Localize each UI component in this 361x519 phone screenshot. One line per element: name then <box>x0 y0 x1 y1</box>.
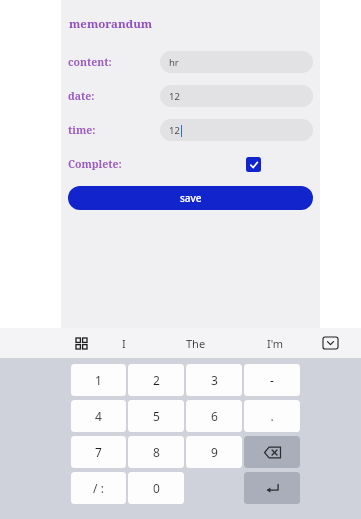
staticText: time: <box>68 123 160 137</box>
staticText: Complete: <box>68 157 122 171</box>
button[interactable]: hr <box>160 51 313 73</box>
button[interactable]: Complete checkbox <box>246 157 261 172</box>
staticText: I'm <box>267 336 284 351</box>
button[interactable]: 1 <box>71 364 126 396</box>
button[interactable]: time: <box>68 113 313 147</box>
staticText: I <box>122 336 126 351</box>
button[interactable]: 12 <box>160 85 313 107</box>
button[interactable]: I'm <box>237 328 313 358</box>
button[interactable]: Backspace <box>244 436 300 468</box>
staticText: 5 <box>153 408 160 424</box>
staticText: content: <box>68 55 160 69</box>
staticText: . <box>270 408 274 424</box>
staticText: 2 <box>153 372 160 388</box>
button[interactable]: 9 <box>186 436 242 468</box>
button[interactable]: - <box>244 364 300 396</box>
staticText: 12 <box>169 90 180 103</box>
staticText: 7 <box>95 444 102 460</box>
button[interactable]: 0 <box>128 472 184 504</box>
staticText: 1 <box>95 372 102 388</box>
staticText: 8 <box>153 444 160 460</box>
staticText: / : <box>93 480 104 496</box>
staticText: 0 <box>153 480 160 496</box>
button[interactable]: date: <box>68 79 313 113</box>
staticText: 9 <box>211 444 218 460</box>
button[interactable]: 6 <box>186 400 242 432</box>
staticText: - <box>270 372 274 388</box>
staticText: 4 <box>95 408 102 424</box>
button[interactable]: 8 <box>128 436 184 468</box>
staticText: 12 <box>169 124 180 137</box>
button[interactable]: Keyboard options <box>70 332 92 354</box>
button[interactable]: Hide keyboard <box>313 328 347 358</box>
button[interactable]: 7 <box>71 436 126 468</box>
staticText: save <box>180 191 202 205</box>
staticText: The <box>186 336 206 351</box>
button[interactable]: save <box>68 186 313 210</box>
button[interactable]: I <box>92 328 155 358</box>
staticText: 3 <box>211 372 218 388</box>
staticText: 6 <box>211 408 218 424</box>
button[interactable]: 12 <box>160 119 313 141</box>
staticText: memorandum <box>69 16 153 32</box>
button[interactable]: Complete: <box>68 149 313 179</box>
button[interactable]: The <box>155 328 237 358</box>
button[interactable]: 3 <box>186 364 242 396</box>
button[interactable]: 2 <box>128 364 184 396</box>
staticText: hr <box>169 56 179 69</box>
staticText: date: <box>68 89 160 103</box>
button[interactable]: 5 <box>128 400 184 432</box>
button[interactable]: content: <box>68 45 313 79</box>
button[interactable]: / : <box>71 472 126 504</box>
button[interactable]: Enter <box>244 472 300 504</box>
button[interactable]: . <box>244 400 300 432</box>
button[interactable]: 4 <box>71 400 126 432</box>
